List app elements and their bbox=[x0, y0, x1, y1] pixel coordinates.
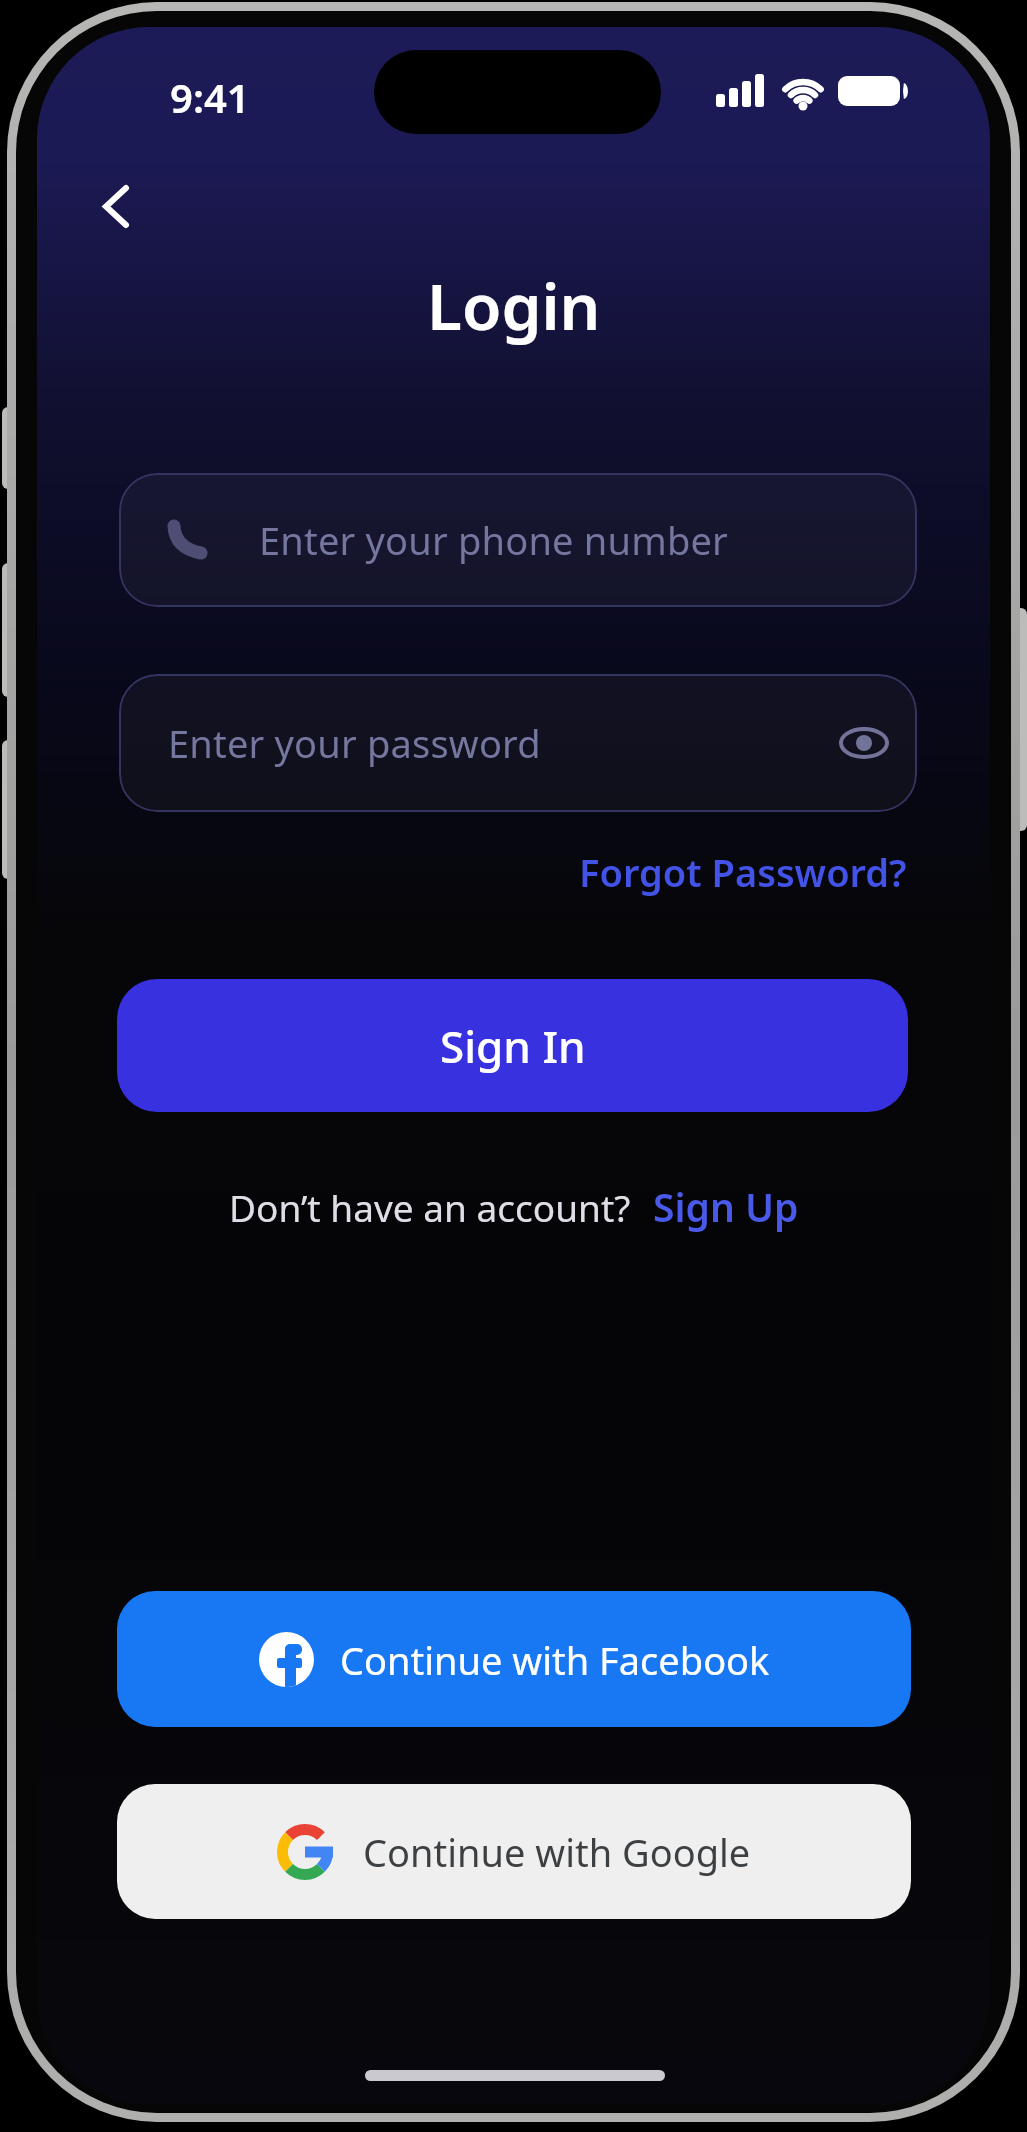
staticText: Continue with Google bbox=[363, 1826, 751, 1878]
button[interactable]: Sign In bbox=[117, 979, 908, 1112]
button[interactable]: Forgot Password? bbox=[579, 846, 907, 898]
staticText: 9:41 bbox=[170, 70, 250, 124]
button[interactable]: Continue with Google bbox=[117, 1784, 911, 1919]
staticText: Enter your phone number bbox=[259, 514, 728, 566]
staticText: Continue with Facebook bbox=[340, 1634, 770, 1686]
staticText: Enter your password bbox=[168, 717, 541, 769]
button[interactable]: Enter your phone number bbox=[119, 473, 917, 607]
button[interactable]: Continue with Facebook bbox=[117, 1591, 911, 1727]
staticText: Don’t have an account? bbox=[229, 1182, 631, 1232]
button[interactable]: Enter your password bbox=[119, 674, 917, 812]
button[interactable]: Sign Up bbox=[653, 1180, 799, 1233]
staticText: Forgot Password? bbox=[579, 846, 907, 898]
staticText: Login bbox=[427, 262, 601, 349]
staticText: Sign Up bbox=[653, 1180, 799, 1233]
staticText: Sign In bbox=[440, 1016, 586, 1076]
button[interactable] bbox=[80, 168, 150, 244]
